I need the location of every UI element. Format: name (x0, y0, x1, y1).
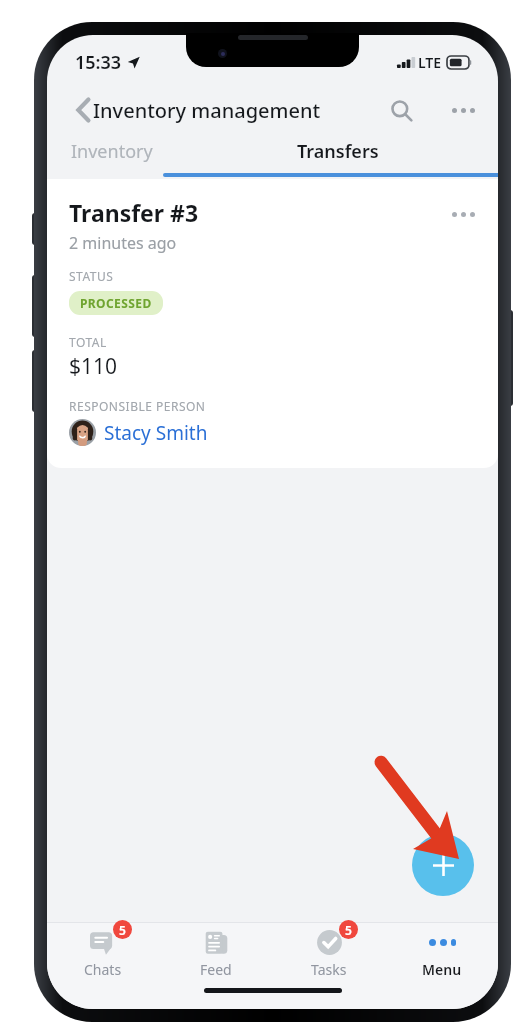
staticText: Transfers (297, 139, 379, 164)
button[interactable]: Menu (385, 923, 498, 985)
staticText: Feed (200, 960, 232, 979)
button[interactable]: Transfer options (446, 197, 480, 231)
button[interactable]: Transfers (163, 137, 498, 179)
staticText: 2 minutes ago (69, 232, 177, 254)
staticText: Stacy Smith (104, 420, 208, 446)
staticText: Transfer #3 (69, 197, 199, 228)
staticText: 15:33 (75, 50, 122, 75)
staticText: $110 (69, 352, 118, 381)
button[interactable]: Back (61, 88, 105, 132)
staticText: TOTAL (69, 334, 107, 350)
button[interactable]: Search (380, 89, 422, 131)
staticText: 5 (345, 922, 352, 938)
staticText: Menu (422, 960, 462, 979)
staticText: LTE (418, 53, 442, 72)
button[interactable]: Feed (159, 923, 272, 985)
button[interactable]: Stacy Smith (69, 419, 208, 446)
button[interactable]: Inventory (61, 137, 163, 179)
button[interactable]: 5 (272, 923, 385, 985)
staticText: Inventory management (93, 97, 321, 124)
staticText: PROCESSED (80, 295, 152, 311)
button[interactable]: More options (442, 89, 484, 131)
staticText: Inventory (71, 139, 153, 164)
staticText: Tasks (311, 960, 347, 979)
button[interactable]: Add (412, 834, 474, 896)
button[interactable]: Transfer #3 (47, 179, 498, 468)
staticText: RESPONSIBLE PERSON (69, 398, 206, 414)
staticText: STATUS (69, 268, 114, 284)
staticText: Chats (84, 960, 122, 979)
button[interactable]: 5 (47, 923, 159, 985)
staticText: 5 (119, 922, 126, 938)
